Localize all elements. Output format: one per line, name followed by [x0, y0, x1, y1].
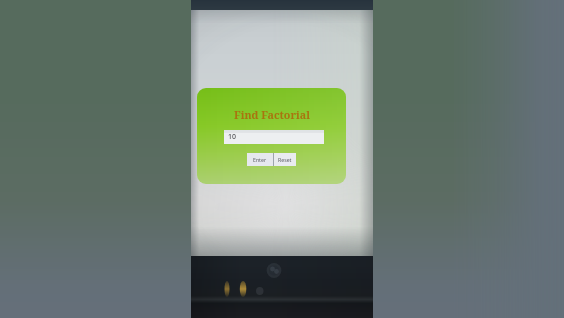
staticText: Reset [278, 156, 292, 163]
staticText: Find Factorial [234, 108, 310, 123]
staticText: Enter [253, 156, 267, 163]
button[interactable]: 10 [224, 130, 324, 144]
button[interactable]: Reset [274, 153, 296, 166]
staticText: 10 [228, 132, 237, 142]
button[interactable]: Enter [247, 153, 273, 166]
